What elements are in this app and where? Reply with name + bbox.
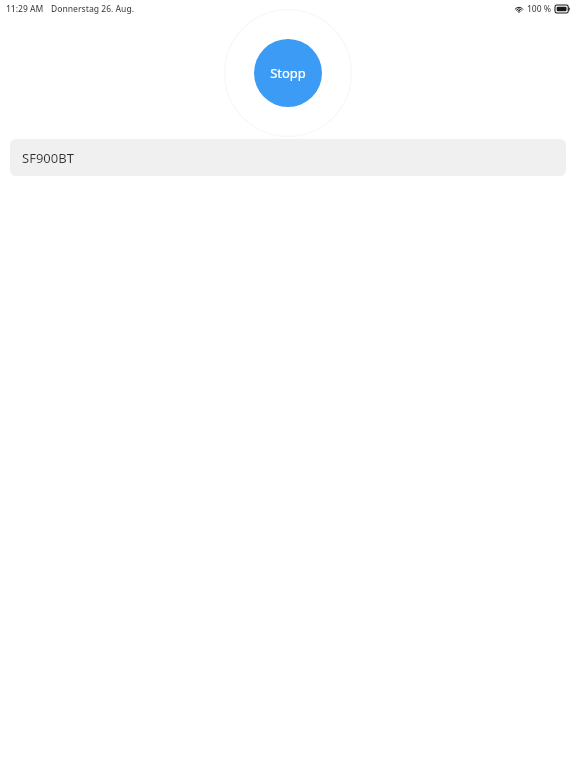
staticText: SF900BT [22,149,74,167]
staticText: 11:29 AM [6,3,44,15]
button[interactable]: Stopp [254,39,322,107]
staticText: Stopp [270,64,306,82]
staticText: Donnerstag 26. Aug. [51,3,134,15]
button[interactable]: SF900BT [10,139,566,176]
staticText: 100 % [527,3,552,15]
